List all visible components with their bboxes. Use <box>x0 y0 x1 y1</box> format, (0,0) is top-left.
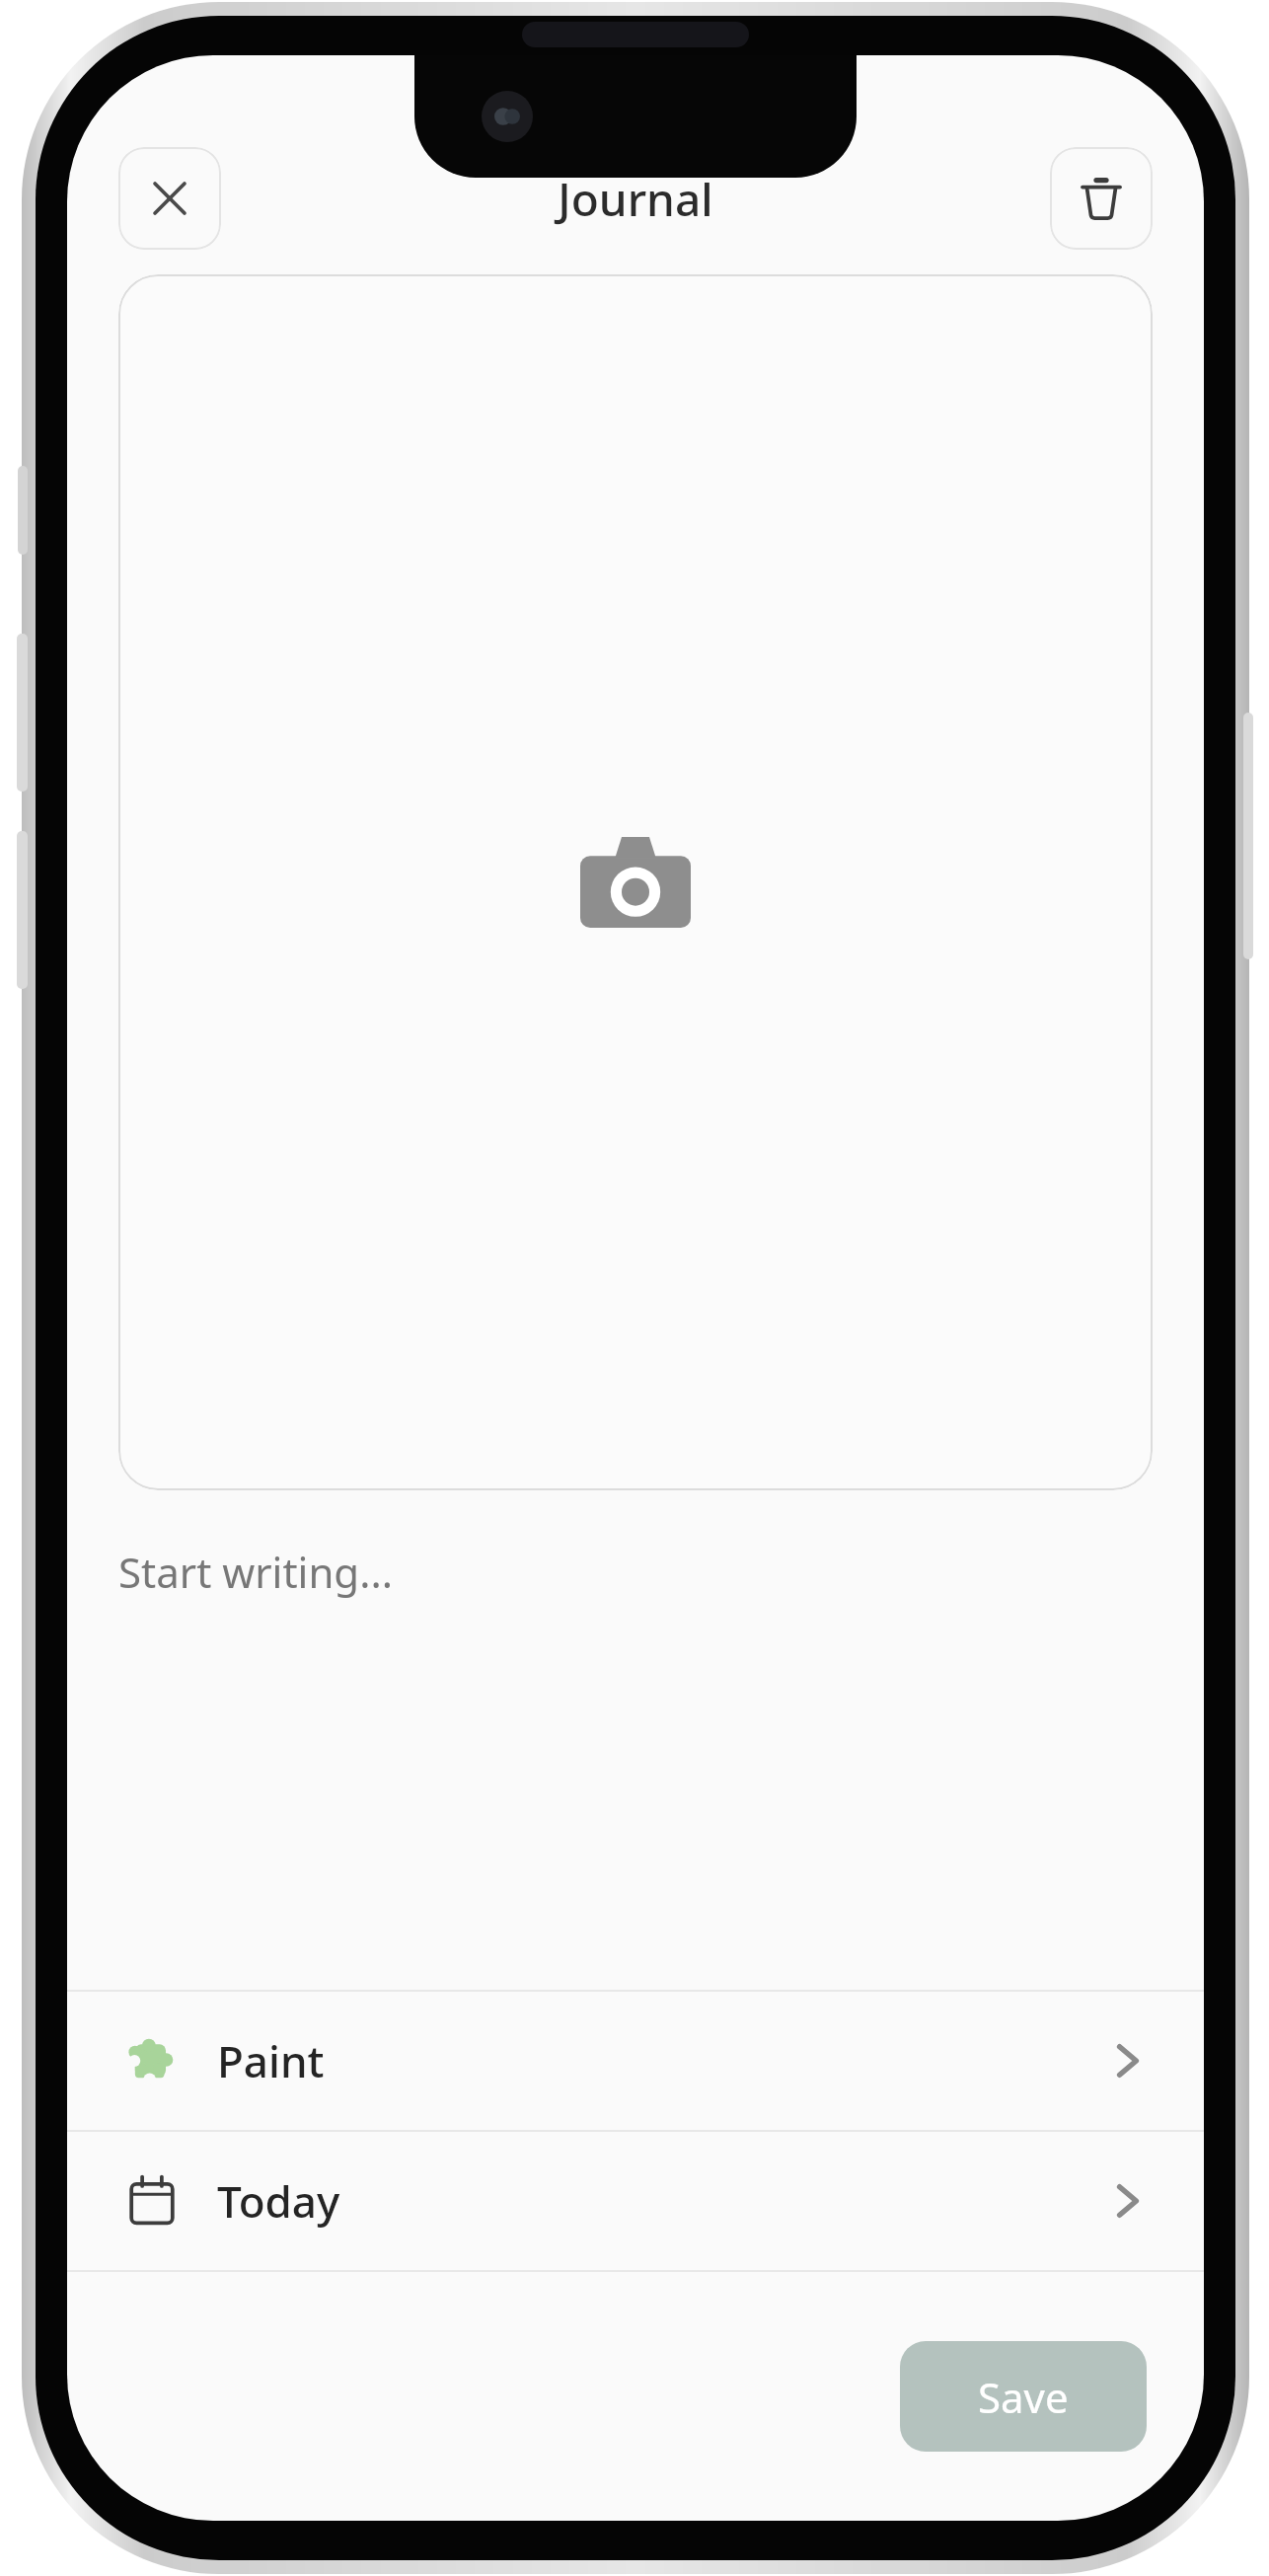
button[interactable]: Paint <box>67 1992 1204 2130</box>
button[interactable]: Add photo <box>118 274 1153 1490</box>
button[interactable]: Delete <box>1050 147 1153 250</box>
staticText: Journal <box>558 168 713 230</box>
button[interactable]: Close <box>118 147 221 250</box>
staticText: Start writing... <box>118 1544 393 1600</box>
staticText: Paint <box>217 2031 325 2090</box>
button[interactable]: Start writing... <box>118 1534 1153 1990</box>
button[interactable]: Save <box>900 2341 1147 2452</box>
staticText: Today <box>217 2171 340 2231</box>
button[interactable]: Today <box>67 2132 1204 2270</box>
staticText: Save <box>978 2369 1069 2425</box>
